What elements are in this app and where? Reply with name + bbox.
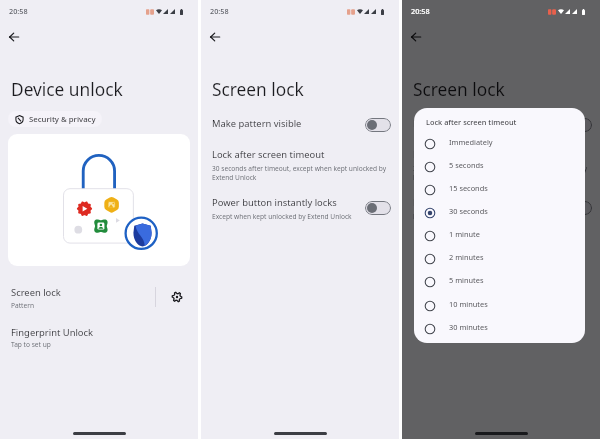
button[interactable]: Security & privacy (8, 111, 102, 127)
staticText: Screen lock (212, 78, 304, 102)
button[interactable]: Toggle (566, 201, 592, 215)
staticText: Make pattern visible (212, 117, 302, 130)
staticText: Make pattern visible (413, 117, 503, 130)
button[interactable]: Toggle (566, 118, 592, 132)
button[interactable]: Back (205, 27, 225, 47)
button[interactable]: 30 seconds (414, 201, 585, 224)
staticText: Power button instantly locks (212, 196, 337, 209)
staticText: 30 seconds after timeout, except when ke… (413, 164, 592, 182)
button[interactable]: 1 minute (414, 224, 585, 247)
staticText: Screen lock (11, 286, 61, 299)
staticText: 30 minutes (449, 322, 488, 332)
staticText: 2 minutes (449, 252, 484, 262)
staticText: Security & privacy (29, 114, 96, 125)
button[interactable]: Immediately (414, 132, 585, 155)
button[interactable]: 30 minutes (414, 317, 585, 340)
staticText: Lock after screen timeout (413, 148, 526, 161)
staticText: 20:58 (411, 6, 430, 16)
button[interactable]: 5 minutes (414, 270, 585, 293)
staticText: Power button instantly locks (413, 196, 538, 209)
button[interactable]: Make pattern visible (402, 109, 600, 137)
staticText: 30 seconds after timeout, except when ke… (212, 164, 391, 182)
staticText: 10 minutes (449, 299, 488, 309)
button[interactable]: 2 minutes (414, 247, 585, 270)
button[interactable]: Lock after screen timeout (402, 147, 592, 185)
staticText: Screen lock (413, 78, 505, 102)
button[interactable]: Screen lock settings (156, 280, 198, 314)
staticText: 20:58 (9, 6, 28, 16)
staticText: 20:58 (210, 6, 229, 16)
staticText: Pattern (11, 301, 34, 310)
button[interactable]: Back (4, 27, 24, 47)
button[interactable]: Fingerprint Unlock (0, 324, 198, 353)
staticText: 5 minutes (449, 275, 484, 285)
button[interactable]: Power button instantly locks (402, 195, 600, 221)
staticText: Except when kept unlocked by Extend Unlo… (212, 212, 352, 221)
staticText: Lock after screen timeout (212, 148, 325, 161)
staticText: Device unlock (11, 78, 123, 102)
staticText: 5 seconds (449, 160, 484, 170)
button[interactable]: Toggle (365, 118, 391, 132)
button[interactable]: 10 minutes (414, 294, 585, 317)
staticText: 30 seconds (449, 206, 488, 216)
staticText: Fingerprint Unlock (11, 326, 94, 339)
button[interactable]: Power button instantly locks (201, 195, 399, 221)
button[interactable]: 15 seconds (414, 178, 585, 201)
staticText: Except when kept unlocked by Extend Unlo… (413, 212, 553, 221)
button[interactable]: Lock after screen timeout (201, 147, 391, 185)
staticText: Tap to set up (11, 340, 51, 349)
button[interactable]: Make pattern visible (201, 109, 399, 137)
button[interactable]: Toggle (365, 201, 391, 215)
button[interactable]: Back (406, 27, 426, 47)
staticText: 15 seconds (449, 183, 488, 193)
button[interactable]: 5 seconds (414, 155, 585, 178)
staticText: Lock after screen timeout (426, 117, 517, 127)
staticText: Immediately (449, 137, 493, 147)
staticText: 1 minute (449, 229, 480, 239)
button[interactable]: Screen lock (0, 280, 150, 314)
